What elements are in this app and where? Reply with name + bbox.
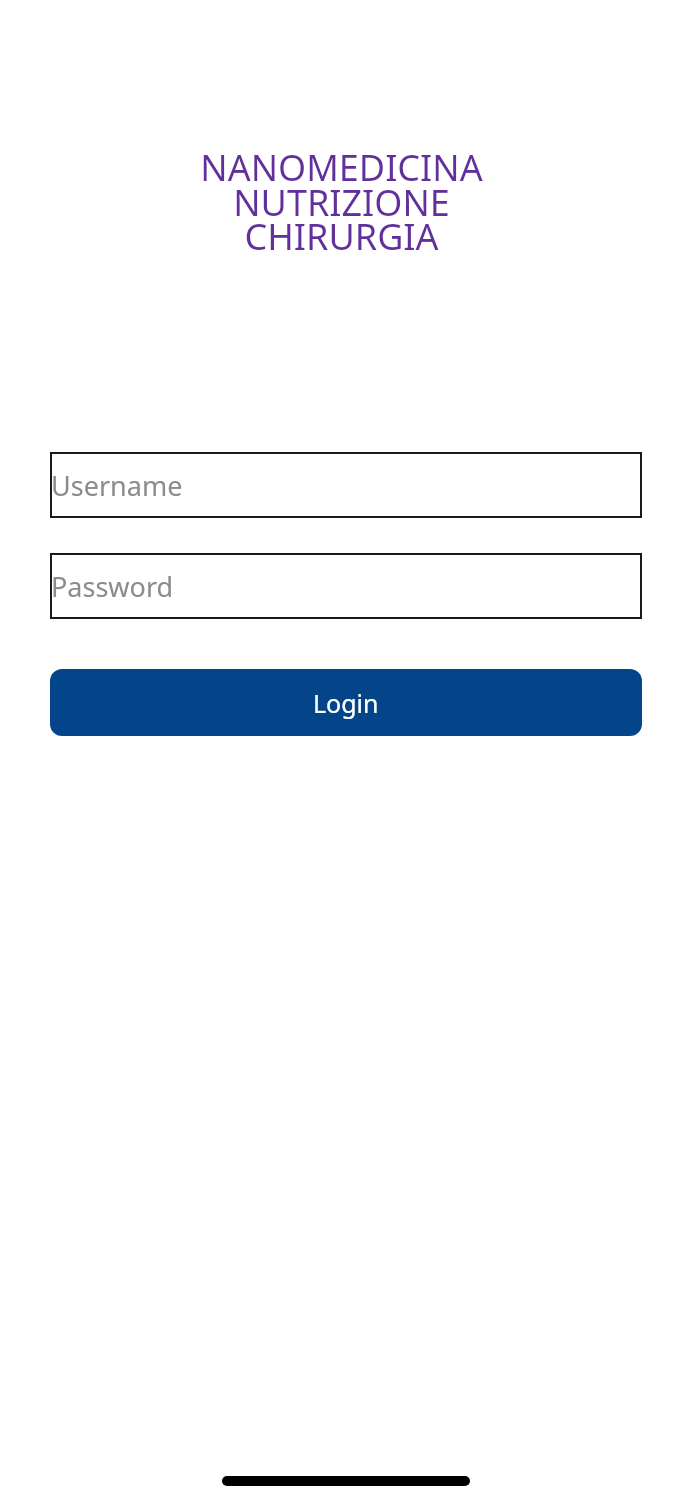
button[interactable]: Login bbox=[50, 669, 642, 736]
staticText: NANOMEDICINA NUTRIZIONE CHIRURGIA bbox=[0, 143, 688, 260]
staticText: Username bbox=[51, 467, 183, 504]
button[interactable]: Username bbox=[50, 452, 642, 518]
button[interactable]: Password bbox=[50, 553, 642, 619]
staticText: Password bbox=[51, 568, 174, 605]
staticText: Login bbox=[313, 686, 379, 720]
